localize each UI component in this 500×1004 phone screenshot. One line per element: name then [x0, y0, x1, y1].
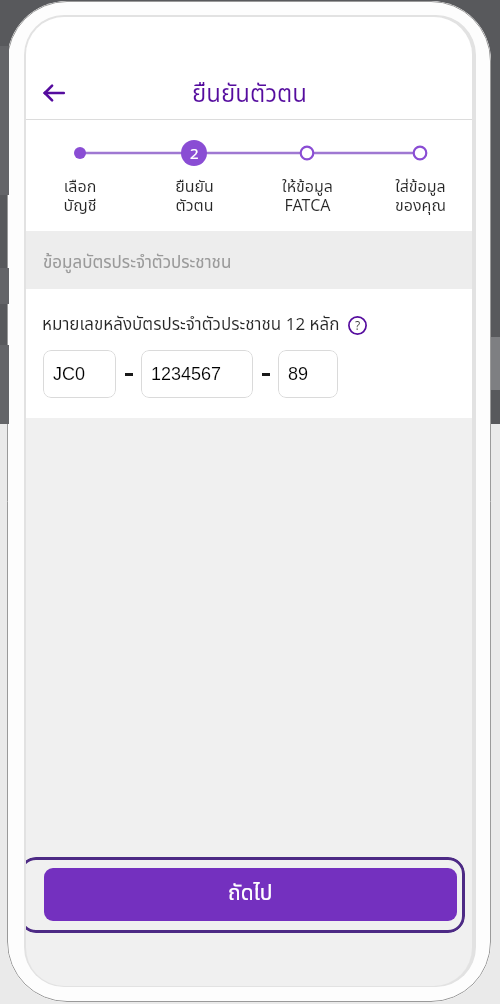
staticText: ? — [355, 317, 361, 335]
staticText: JC0 — [53, 364, 86, 384]
button[interactable]: เลือก บัญชี — [30, 175, 130, 219]
staticText: ใส่ข้อมูล ของคุณ — [395, 175, 446, 219]
staticText: ถัดไป — [228, 878, 273, 910]
staticText: ให้ข้อมูล FATCA — [282, 175, 333, 219]
staticText: 2 — [190, 143, 199, 163]
button[interactable]: ให้ข้อมูล FATCA — [257, 175, 357, 219]
button[interactable]: ยืนยัน ตัวตน — [144, 175, 244, 219]
staticText: 1234567 — [151, 364, 222, 384]
button[interactable]: JC0 — [43, 350, 116, 398]
staticText: ยืนยัน ตัวตน — [175, 175, 214, 219]
button[interactable]: 89 — [278, 350, 338, 398]
staticText: ยืนยันตัวตน — [192, 77, 307, 113]
button[interactable]: ข้อมูลบัตรประจำตัวประชาชน — [26, 231, 472, 289]
staticText: ข้อมูลบัตรประจำตัวประชาชน — [43, 250, 232, 276]
button[interactable]: Help — [348, 316, 367, 335]
button[interactable]: ถัดไป — [44, 868, 457, 921]
staticText: เลือก บัญชี — [63, 175, 97, 219]
button[interactable]: ใส่ข้อมูล ของคุณ — [370, 175, 470, 219]
button[interactable]: 1234567 — [141, 350, 253, 398]
button[interactable]: Back — [32, 71, 75, 114]
staticText: หมายเลขหลังบัตรประจำตัวประชาชน 12 หลัก — [42, 312, 340, 338]
staticText: 89 — [288, 364, 309, 384]
